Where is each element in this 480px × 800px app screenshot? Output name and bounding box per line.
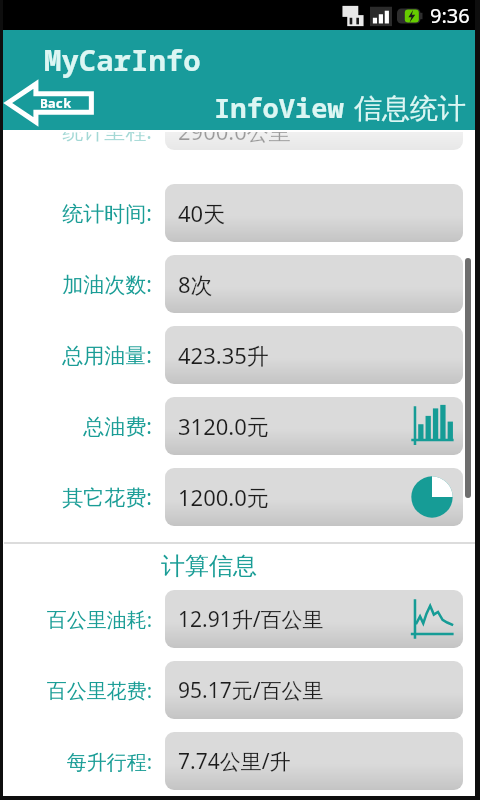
staticText: 7.74公里/升 <box>178 747 291 776</box>
staticText: 信息统计 <box>354 91 466 126</box>
other: Fuel cost chart <box>409 404 455 448</box>
button[interactable]: 统计时间: <box>0 184 480 242</box>
staticText: 1200.0元 <box>178 482 269 512</box>
staticText: 总用油量: <box>62 341 152 370</box>
button[interactable]: 每升行程: <box>0 732 480 790</box>
button[interactable]: 统计里程: <box>0 132 480 150</box>
staticText: 9:36 <box>430 2 470 29</box>
staticText: 加油次数: <box>62 270 152 299</box>
button[interactable]: 总用油量: <box>0 326 480 384</box>
other: Other cost pie chart <box>409 475 455 519</box>
staticText: MyCarInfo <box>44 40 201 79</box>
staticText: 每升行程: <box>66 748 152 775</box>
staticText: 12.91升/百公里 <box>178 605 324 634</box>
staticText: 423.35升 <box>178 340 269 370</box>
other: Consumption line chart <box>409 597 455 641</box>
button[interactable]: Back <box>6 82 94 124</box>
staticText: 8次 <box>178 269 213 299</box>
staticText: 总油费: <box>83 412 152 441</box>
staticText: 40天 <box>178 198 226 228</box>
staticText: 3120.0元 <box>178 411 269 441</box>
staticText: 统计里程: <box>62 132 152 146</box>
staticText: 计算信息 <box>161 551 257 581</box>
staticText: Back <box>40 94 72 112</box>
button[interactable]: 百公里油耗: <box>0 590 480 648</box>
staticText: 2900.0公里 <box>178 132 291 146</box>
staticText: 95.17元/百公里 <box>178 676 324 705</box>
button[interactable]: 总油费: <box>0 397 480 455</box>
staticText: InfoView <box>214 89 344 126</box>
staticText: 统计时间: <box>62 199 152 228</box>
staticText: 百公里花费: <box>46 677 152 704</box>
staticText: 其它花费: <box>62 483 152 512</box>
button[interactable]: 其它花费: <box>0 468 480 526</box>
button[interactable]: 加油次数: <box>0 255 480 313</box>
staticText: 百公里油耗: <box>46 606 152 633</box>
button[interactable]: 百公里花费: <box>0 661 480 719</box>
